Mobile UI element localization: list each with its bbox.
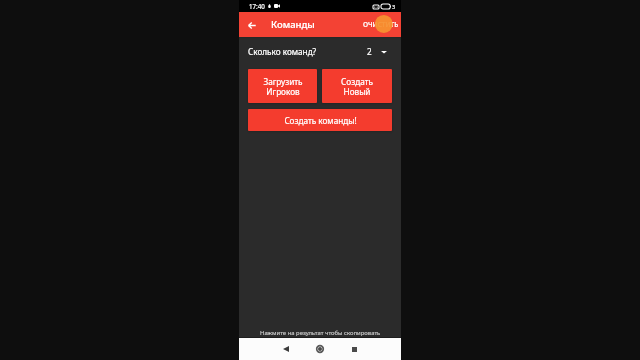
staticText: 2 — [367, 46, 372, 57]
staticText: 3 — [392, 3, 396, 10]
staticText: ОЧИСТИТЬ — [363, 20, 399, 29]
staticText: Команды — [271, 18, 315, 31]
button[interactable]: ОЧИСТИТЬ — [363, 20, 399, 29]
staticText: Сколько команд? — [248, 46, 317, 57]
button[interactable]: Back — [277, 340, 295, 358]
button[interactable]: Нажмите на результат чтобы скопировать — [260, 329, 381, 337]
button[interactable]: 2 — [367, 46, 392, 57]
button[interactable]: Загрузить Игроков — [248, 69, 317, 103]
button[interactable]: Back — [244, 17, 260, 33]
staticText: Создать команды! — [284, 115, 357, 126]
button[interactable]: Создать Новый — [322, 69, 392, 103]
staticText: Загрузить Игроков — [263, 76, 303, 97]
staticText: Создать Новый — [341, 76, 373, 97]
button[interactable]: Recents — [345, 340, 363, 358]
button[interactable]: Создать команды! — [248, 109, 392, 131]
staticText: 17:40 — [249, 2, 265, 10]
button[interactable]: Home — [311, 340, 329, 358]
